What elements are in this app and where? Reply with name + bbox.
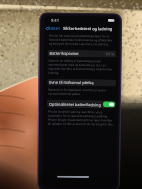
staticText: 84 % xyxy=(106,51,115,56)
staticText: Batterikapacitet xyxy=(50,51,80,56)
button[interactable]: Optimaliseret batteriladning xyxy=(47,100,116,108)
staticText: Batteri xyxy=(48,26,61,31)
button[interactable]: Optimaliseret batteriladning xyxy=(103,101,115,107)
staticText: Optimaliseret batteriladning xyxy=(49,102,101,107)
staticText: Evne til maksimal ydelse xyxy=(49,80,94,85)
button[interactable]: Batteri xyxy=(45,26,62,31)
button[interactable]: Evne til maksimal ydelse xyxy=(47,79,116,86)
staticText: 9:41 xyxy=(51,18,59,23)
staticText: Sikkerhedstest og ladning xyxy=(63,26,113,31)
staticText: iPhone har avanceret batteribeskyttelse … xyxy=(49,34,116,46)
staticText: iPhone forsinker ladning over 80 % i vis… xyxy=(48,110,115,126)
button[interactable]: Batterikapacitet xyxy=(48,50,117,57)
staticText: Dette er en måling af batterikapaciteten… xyxy=(48,59,115,75)
staticText: Batteriet er for øjeblikket i stand til … xyxy=(48,88,115,96)
